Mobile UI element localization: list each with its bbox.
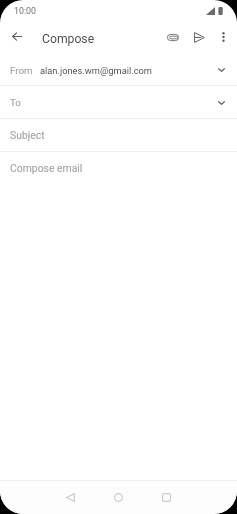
staticText: Compose [42, 32, 95, 46]
staticText: 10:00 [14, 6, 36, 16]
button[interactable]: Home [101, 481, 135, 514]
button[interactable]: Recent apps [149, 481, 183, 514]
staticText: From [10, 65, 33, 76]
button[interactable]: Back [53, 481, 87, 514]
button[interactable]: Send [186, 22, 212, 52]
button[interactable]: Subject [0, 119, 237, 152]
button[interactable]: From [0, 53, 237, 86]
button[interactable]: To [0, 86, 237, 119]
staticText: To [10, 97, 21, 108]
staticText: Compose email [10, 162, 83, 174]
button[interactable]: Navigate up [1, 20, 33, 52]
button[interactable]: More options [212, 22, 234, 52]
staticText: alan.jones.wm@gmail.com [40, 65, 153, 76]
staticText: Subject [10, 129, 45, 141]
button[interactable]: Compose email [0, 152, 237, 185]
button[interactable]: Attach file [160, 22, 186, 52]
